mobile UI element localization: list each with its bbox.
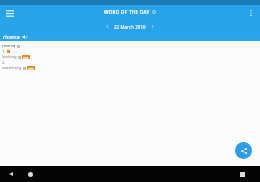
button[interactable]: Open navigation drawer [3,7,17,21]
staticText: looking [2,54,17,60]
button[interactable]: Previous day [101,21,114,32]
staticText: 2. [2,60,6,65]
staticText: see [28,66,34,70]
staticText: ricerca [3,34,20,41]
button[interactable]: Recent apps [236,168,248,180]
button[interactable]: Share [235,142,252,159]
button[interactable]: see [28,66,34,70]
button[interactable]: Back [5,168,17,180]
staticText: ricerca [2,43,16,49]
button[interactable]: Home [24,168,36,180]
button[interactable]: Pronounce word [22,34,28,40]
button[interactable]: ricerca [0,33,260,41]
staticText: searching [2,65,22,71]
staticText: see [23,55,29,59]
button[interactable]: searching [2,65,260,71]
button[interactable]: Next day [146,21,159,32]
staticText: WORD OF THE DAY [104,9,150,15]
staticText: 1. [2,49,6,54]
staticText: 22 March 2019 [114,24,146,30]
button[interactable]: looking [2,54,260,60]
button[interactable]: ricerca [2,43,260,49]
button[interactable]: see [23,55,29,59]
button[interactable]: More options [245,7,257,19]
